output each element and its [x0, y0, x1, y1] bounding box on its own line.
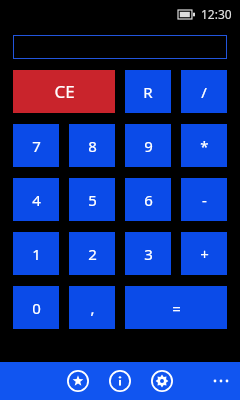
staticText: 5 — [88, 190, 97, 210]
button[interactable]: = — [125, 286, 227, 329]
button[interactable]: CE — [13, 70, 115, 113]
button[interactable]: / — [181, 70, 227, 113]
button[interactable]: , — [69, 286, 115, 329]
button[interactable]: 8 — [69, 124, 115, 167]
staticText: 8 — [88, 136, 97, 156]
button[interactable]: Info — [107, 368, 133, 394]
button[interactable]: - — [181, 178, 227, 221]
staticText: 6 — [144, 190, 153, 210]
button[interactable]: 6 — [125, 178, 171, 221]
button[interactable]: Settings — [149, 368, 175, 394]
staticText: 3 — [144, 244, 153, 264]
staticText: 0 — [32, 298, 41, 318]
staticText: 1 — [32, 244, 41, 264]
button[interactable]: + — [181, 232, 227, 275]
staticText: 7 — [32, 136, 41, 156]
button[interactable]: R — [125, 70, 171, 113]
button[interactable] — [13, 35, 227, 59]
button[interactable]: 4 — [13, 178, 59, 221]
button[interactable]: 3 — [125, 232, 171, 275]
button[interactable]: 1 — [13, 232, 59, 275]
staticText: , — [90, 298, 95, 318]
button[interactable]: 7 — [13, 124, 59, 167]
staticText: / — [201, 82, 207, 102]
staticText: = — [172, 298, 181, 318]
staticText: + — [200, 244, 209, 264]
button[interactable]: * — [181, 124, 227, 167]
staticText: CE — [54, 80, 75, 103]
staticText: R — [143, 82, 153, 102]
staticText: 12:30 — [201, 6, 232, 22]
button[interactable]: 0 — [13, 286, 59, 329]
button[interactable]: 5 — [69, 178, 115, 221]
staticText: - — [202, 190, 207, 210]
button[interactable]: 2 — [69, 232, 115, 275]
staticText: * — [200, 136, 209, 156]
button[interactable]: 9 — [125, 124, 171, 167]
staticText: 9 — [144, 136, 153, 156]
staticText: 2 — [88, 244, 97, 264]
button[interactable]: Favorites — [65, 368, 91, 394]
staticText: 4 — [32, 190, 41, 210]
button[interactable]: More options — [210, 370, 232, 392]
